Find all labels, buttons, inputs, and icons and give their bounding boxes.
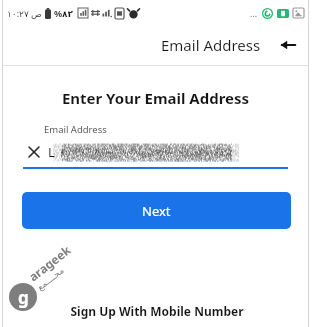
button[interactable]: Back: [275, 32, 301, 58]
staticText: Email Address: [44, 123, 107, 136]
button[interactable]: Clear: [24, 142, 289, 162]
staticText: مجــــمع: [35, 265, 66, 292]
staticText: Email Address: [161, 35, 261, 55]
staticText: ...: [250, 7, 258, 19]
staticText: L: [48, 143, 55, 161]
staticText: arageek: [25, 242, 74, 284]
staticText: ص ١٠:٢٧: [7, 7, 42, 19]
other: Clear: [24, 142, 44, 162]
staticText: Enter Your Email Address: [2, 88, 309, 108]
button[interactable]: Sign Up With Mobile Number: [70, 303, 244, 319]
staticText: %٨٢: [54, 7, 74, 19]
staticText: Next: [142, 202, 171, 220]
staticText: g: [18, 286, 29, 309]
button[interactable]: Next: [22, 192, 291, 229]
